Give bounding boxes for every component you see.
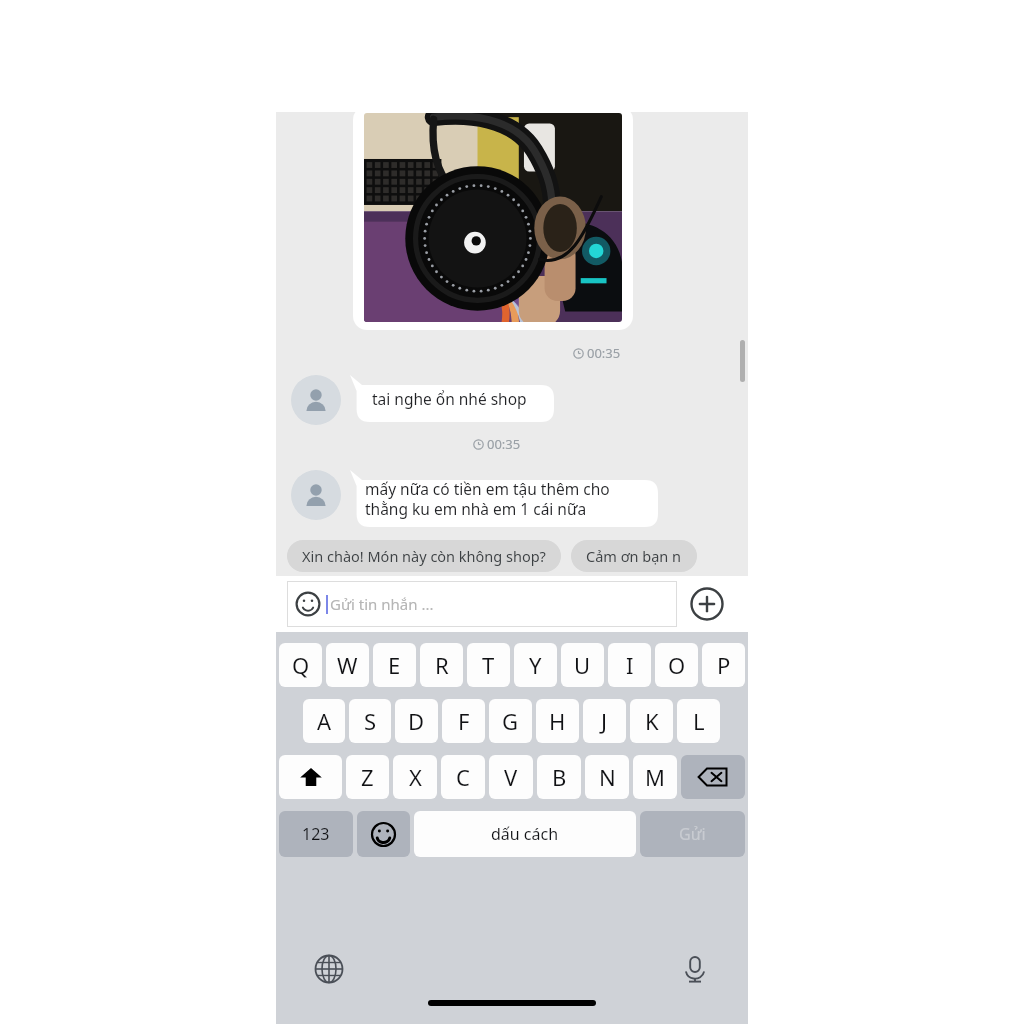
button[interactable]: Q <box>279 643 322 687</box>
staticText: 00:35 <box>587 344 621 362</box>
button[interactable]: A <box>303 699 345 743</box>
staticText: O <box>668 650 686 680</box>
button[interactable]: Y <box>514 643 557 687</box>
button[interactable]: R <box>420 643 463 687</box>
staticText: I <box>626 650 634 680</box>
staticText: G <box>502 706 519 736</box>
button[interactable]: Avatar <box>291 375 341 425</box>
button[interactable]: I <box>608 643 651 687</box>
staticText: L <box>693 706 705 736</box>
button[interactable]: F <box>442 699 485 743</box>
staticText: tai nghe ổn nhé shop <box>372 388 527 409</box>
staticText: Cảm ơn bạn n <box>586 546 682 566</box>
button[interactable]: Backspace <box>681 755 745 799</box>
button[interactable]: tai nghe ổn nhé shop <box>350 375 554 422</box>
staticText: V <box>504 762 518 792</box>
button[interactable]: W <box>326 643 369 687</box>
button[interactable]: Xin chào! Món này còn không shop? <box>287 540 561 572</box>
button[interactable]: Add attachment <box>677 576 737 632</box>
button[interactable]: Cảm ơn bạn n <box>571 540 697 572</box>
staticText: E <box>388 650 401 680</box>
button[interactable]: Gửi <box>640 811 745 857</box>
staticText: R <box>435 650 449 680</box>
staticText: Q <box>292 650 310 680</box>
button[interactable]: H <box>536 699 579 743</box>
button[interactable]: Voice input <box>676 950 714 988</box>
staticText: Gửi <box>679 823 706 845</box>
staticText: Gửi tin nhắn ... <box>330 594 434 614</box>
button[interactable]: C <box>441 755 485 799</box>
staticText: dấu cách <box>491 823 559 845</box>
staticText: D <box>408 706 425 736</box>
button[interactable]: T <box>467 643 510 687</box>
staticText: Z <box>361 762 374 792</box>
staticText: H <box>549 706 566 736</box>
button[interactable]: G <box>489 699 532 743</box>
staticText: 123 <box>302 823 330 845</box>
staticText: F <box>458 706 470 736</box>
button[interactable]: Z <box>346 755 389 799</box>
button[interactable]: M <box>633 755 677 799</box>
button[interactable]: dấu cách <box>414 811 636 857</box>
button[interactable]: J <box>583 699 626 743</box>
button[interactable]: K <box>630 699 673 743</box>
button[interactable]: N <box>585 755 629 799</box>
staticText: U <box>574 650 591 680</box>
button[interactable]: B <box>537 755 581 799</box>
button[interactable]: mấy nữa có tiền em tậu thêm cho thằng ku… <box>350 470 658 527</box>
staticText: P <box>717 650 731 680</box>
button[interactable]: L <box>677 699 720 743</box>
staticText: M <box>645 762 665 792</box>
staticText: Xin chào! Món này còn không shop? <box>302 546 546 566</box>
staticText: B <box>552 762 567 792</box>
button[interactable]: V <box>489 755 533 799</box>
staticText: T <box>482 650 495 680</box>
staticText: 00:35 <box>487 435 521 453</box>
staticText: X <box>409 762 422 792</box>
button[interactable]: Emoji keyboard <box>357 811 410 857</box>
button[interactable]: 123 <box>279 811 353 857</box>
staticText: mấy nữa có tiền em tậu thêm cho thằng ku… <box>365 478 610 520</box>
button[interactable]: Change language <box>310 950 348 988</box>
staticText: J <box>601 706 608 736</box>
button[interactable] <box>353 106 633 330</box>
button[interactable]: D <box>395 699 438 743</box>
staticText: A <box>317 706 332 736</box>
button[interactable]: X <box>393 755 437 799</box>
button[interactable]: S <box>349 699 391 743</box>
staticText: K <box>645 706 659 736</box>
button[interactable]: Avatar <box>291 470 341 520</box>
staticText: C <box>456 762 470 792</box>
button[interactable]: E <box>373 643 416 687</box>
staticText: Y <box>529 650 542 680</box>
button[interactable]: Emoji <box>287 581 677 627</box>
other: Emoji <box>295 591 321 617</box>
staticText: W <box>337 650 358 680</box>
button[interactable]: U <box>561 643 604 687</box>
staticText: N <box>599 762 616 792</box>
button[interactable]: P <box>702 643 745 687</box>
button[interactable]: O <box>655 643 698 687</box>
staticText: S <box>364 706 377 736</box>
button[interactable]: Shift <box>279 755 342 799</box>
